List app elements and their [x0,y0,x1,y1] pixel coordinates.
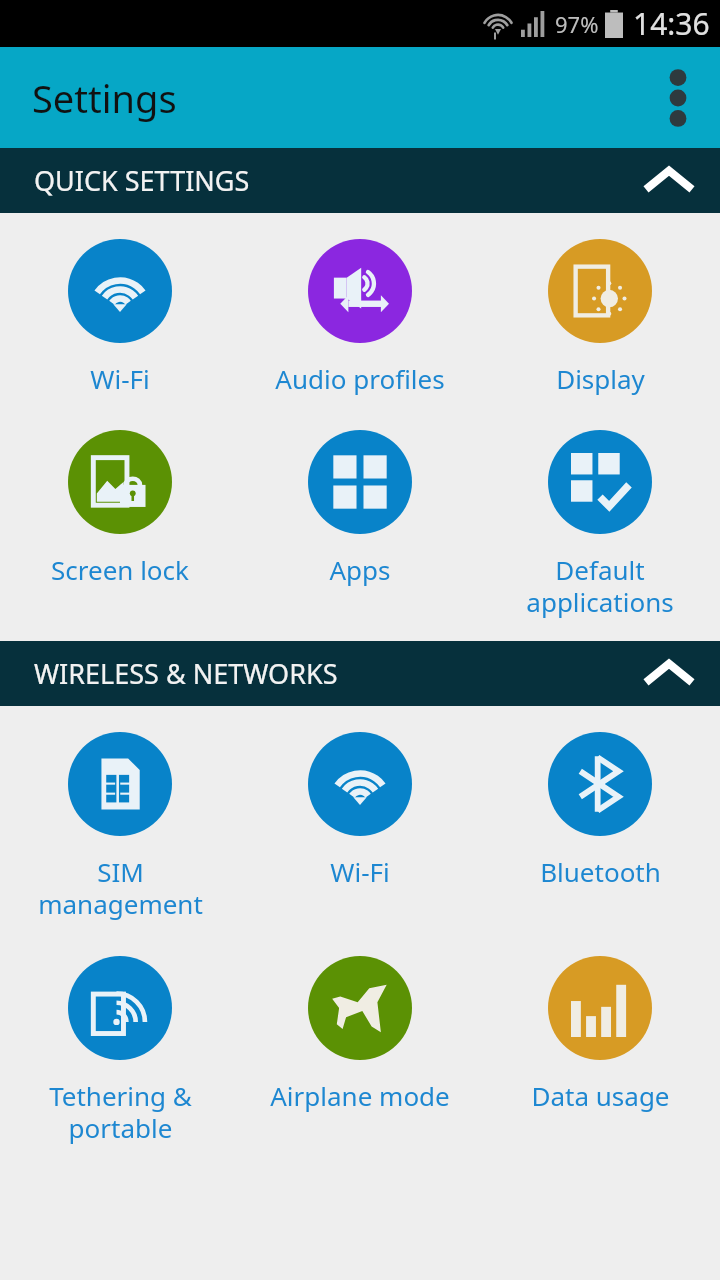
staticText: Wi-Fi [330,854,390,889]
button[interactable]: More options [636,47,720,148]
button[interactable]: Wi-Fi [240,732,480,889]
staticText: Display [556,361,645,396]
staticText: 14:36 [633,3,710,44]
staticText: Tethering & portable [49,1078,192,1146]
button[interactable]: Default applications [480,430,720,620]
staticText: WIRELESS & NETWORKS [34,655,338,692]
staticText: Wi-Fi [90,361,150,396]
staticText: 97% [555,9,599,39]
staticText: Audio profiles [275,361,445,396]
staticText: Settings [32,72,177,124]
staticText: Bluetooth [540,854,661,889]
staticText: SIM management [38,854,203,922]
staticText: Airplane mode [270,1078,450,1113]
staticText: QUICK SETTINGS [34,162,250,199]
button[interactable]: Tethering & portable [0,956,240,1146]
staticText: Default applications [526,552,674,620]
staticText: Screen lock [51,552,189,587]
button[interactable]: Audio profiles [240,239,480,396]
button[interactable]: Bluetooth [480,732,720,889]
button[interactable]: WIRELESS & NETWORKS [0,641,720,706]
button[interactable]: Apps [240,430,480,587]
staticText: Apps [329,552,391,587]
button[interactable]: Screen lock [0,430,240,587]
button[interactable]: QUICK SETTINGS [0,148,720,213]
button[interactable]: Wi-Fi [0,239,240,396]
button[interactable]: SIM management [0,732,240,922]
button[interactable]: Airplane mode [240,956,480,1113]
button[interactable]: Data usage [480,956,720,1113]
staticText: Data usage [531,1078,670,1113]
button[interactable]: Display [480,239,720,396]
